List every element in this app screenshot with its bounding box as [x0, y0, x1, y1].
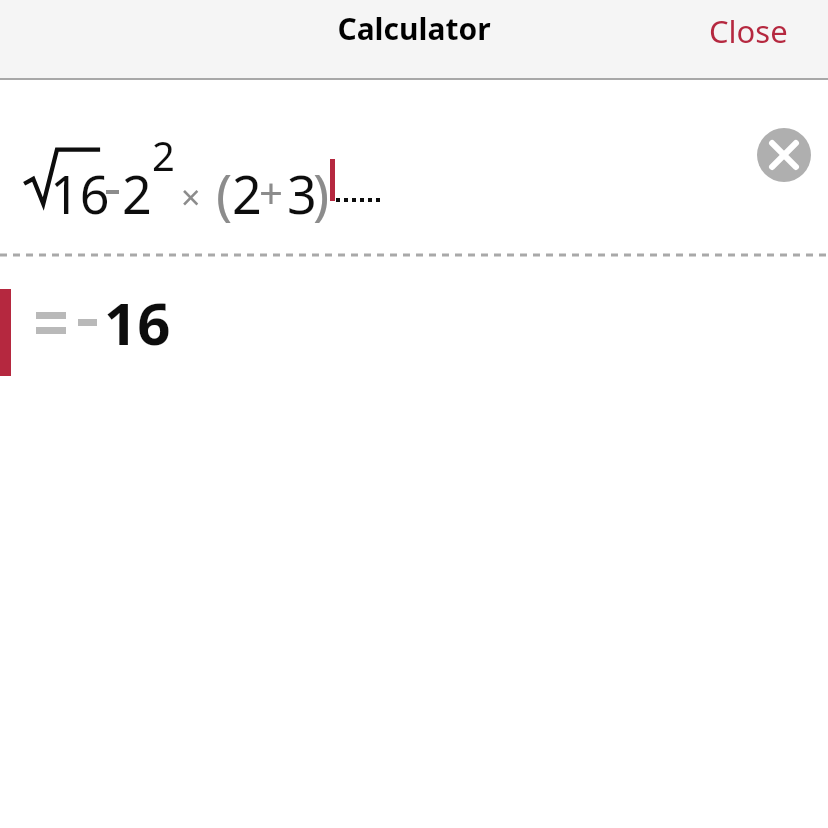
staticText: Calculator [0, 8, 828, 49]
staticText: ( [216, 156, 233, 230]
staticText: 16 [50, 158, 110, 229]
button[interactable]: Clear [757, 128, 811, 182]
staticText: + [259, 164, 284, 221]
staticText: Close [709, 10, 788, 52]
staticText: ) [313, 156, 330, 230]
staticText: 3 [287, 158, 317, 229]
staticText: × [181, 174, 201, 220]
button[interactable]: 16 [0, 257, 828, 387]
staticText: 2 [152, 128, 175, 182]
staticText: 16 [104, 283, 171, 362]
button[interactable]: Close [693, 4, 804, 58]
staticText: 2 [122, 158, 152, 229]
button[interactable]: 16 [0, 80, 828, 253]
staticText: 2 [232, 158, 262, 229]
